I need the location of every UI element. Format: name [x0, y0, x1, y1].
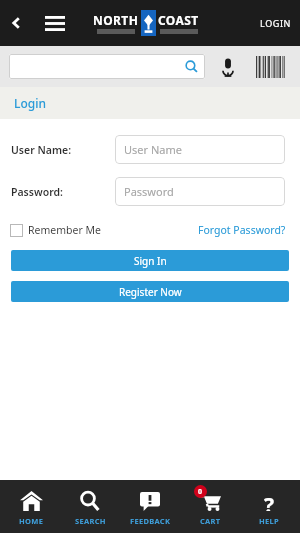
staticText: FEEDBACK — [130, 516, 171, 526]
staticText: HELP — [259, 516, 279, 526]
staticText: HOME — [19, 516, 44, 526]
button[interactable]: HOME — [2, 480, 60, 533]
staticText: Register Now — [119, 285, 182, 299]
button[interactable]: FEEDBACK — [121, 480, 179, 533]
staticText: COAST — [158, 12, 199, 28]
staticText: SEARCH — [75, 516, 106, 526]
staticText: 0 — [198, 487, 203, 497]
staticText: User Name: — [11, 143, 72, 157]
button[interactable]: Register Now — [11, 281, 289, 302]
staticText: LOGIN — [260, 17, 292, 29]
other: Search — [185, 60, 198, 73]
button[interactable]: Voice search — [215, 54, 241, 80]
button[interactable]: North Coast Electric Company — [93, 10, 199, 36]
staticText: Forgot Password? — [198, 223, 286, 237]
staticText: Login — [14, 95, 46, 111]
button[interactable]: Password — [115, 177, 285, 206]
staticText: NORTH — [93, 12, 139, 28]
button[interactable]: Menu — [40, 8, 70, 38]
button[interactable]: SEARCH — [61, 480, 119, 533]
staticText: User Name — [124, 142, 182, 157]
staticText: ? — [264, 491, 275, 511]
button[interactable]: Search — [9, 54, 205, 79]
button[interactable]: Back — [2, 9, 30, 37]
button[interactable]: 0 — [181, 480, 239, 533]
button[interactable]: Scan barcode — [253, 54, 291, 80]
button[interactable]: ? — [240, 480, 298, 533]
button[interactable]: LOGIN — [252, 11, 300, 35]
staticText: Sign In — [134, 254, 167, 268]
button[interactable]: Remember Me — [10, 223, 101, 237]
button[interactable]: Forgot Password? — [198, 223, 286, 237]
button[interactable]: Sign In — [11, 250, 289, 271]
button[interactable]: User Name — [115, 135, 285, 164]
staticText: Password — [124, 184, 174, 199]
staticText: Remember Me — [28, 223, 101, 237]
staticText: CART — [200, 516, 221, 526]
staticText: Password: — [11, 185, 63, 199]
